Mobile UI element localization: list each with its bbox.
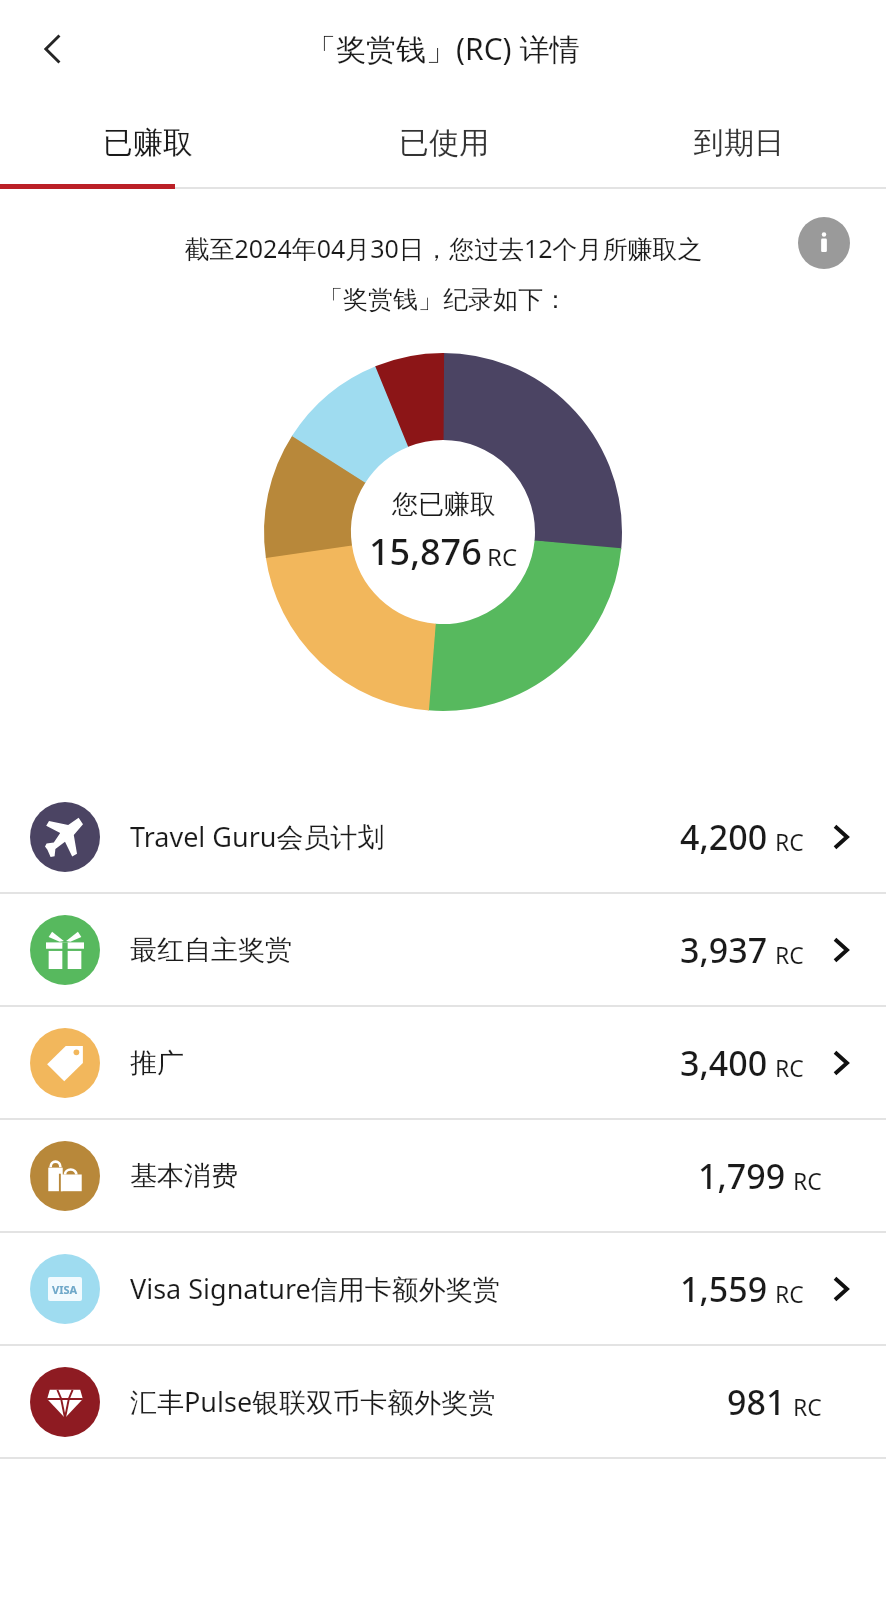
staticText: Travel Guru会员计划 <box>130 818 680 855</box>
staticText: 最红自主奖赏 <box>130 933 680 967</box>
button[interactable]: Back <box>18 13 90 85</box>
button[interactable]: 最红自主奖赏 <box>0 894 886 1005</box>
staticText: 「奖赏钱」纪录如下： <box>318 284 568 315</box>
button[interactable]: 推广 <box>0 1007 886 1118</box>
staticText: 15,876 <box>369 527 482 576</box>
staticText: 已使用 <box>399 124 489 162</box>
staticText: 您已赚取 <box>392 488 496 521</box>
staticText: RC <box>487 540 518 573</box>
staticText: 汇丰Pulse银联双币卡额外奖赏 <box>130 1383 727 1420</box>
staticText: RC <box>793 1165 822 1196</box>
staticText: 4,200 <box>680 814 768 860</box>
button[interactable]: Information <box>798 217 850 269</box>
staticText: 1,799 <box>698 1153 786 1199</box>
staticText: RC <box>775 1278 804 1309</box>
staticText: RC <box>775 1052 804 1083</box>
button[interactable]: Travel Guru会员计划 <box>0 781 886 892</box>
staticText: RC <box>775 939 804 970</box>
button[interactable]: 到期日 <box>591 97 886 189</box>
staticText: 已赚取 <box>103 124 193 162</box>
staticText: RC <box>775 826 804 857</box>
button[interactable]: 汇丰Pulse银联双币卡额外奖赏 <box>0 1346 886 1457</box>
staticText: 「奖赏钱」(RC) 详情 <box>306 28 580 69</box>
staticText: VISA <box>52 1282 78 1297</box>
staticText: 到期日 <box>694 124 784 162</box>
button[interactable]: 已使用 <box>296 97 591 189</box>
staticText: 981 <box>727 1379 786 1425</box>
staticText: 基本消费 <box>130 1159 698 1193</box>
staticText: 截至2024年04月30日，您过去12个月所赚取之 <box>184 231 703 265</box>
staticText: 3,400 <box>680 1040 768 1086</box>
staticText: 推广 <box>130 1046 680 1080</box>
staticText: 1,559 <box>680 1266 768 1312</box>
staticText: Visa Signature信用卡额外奖赏 <box>130 1270 680 1307</box>
button[interactable]: 基本消费 <box>0 1120 886 1231</box>
staticText: RC <box>793 1391 822 1422</box>
staticText: 3,937 <box>680 927 768 973</box>
button[interactable]: VISA <box>0 1233 886 1344</box>
button[interactable]: 已赚取 <box>0 97 296 189</box>
